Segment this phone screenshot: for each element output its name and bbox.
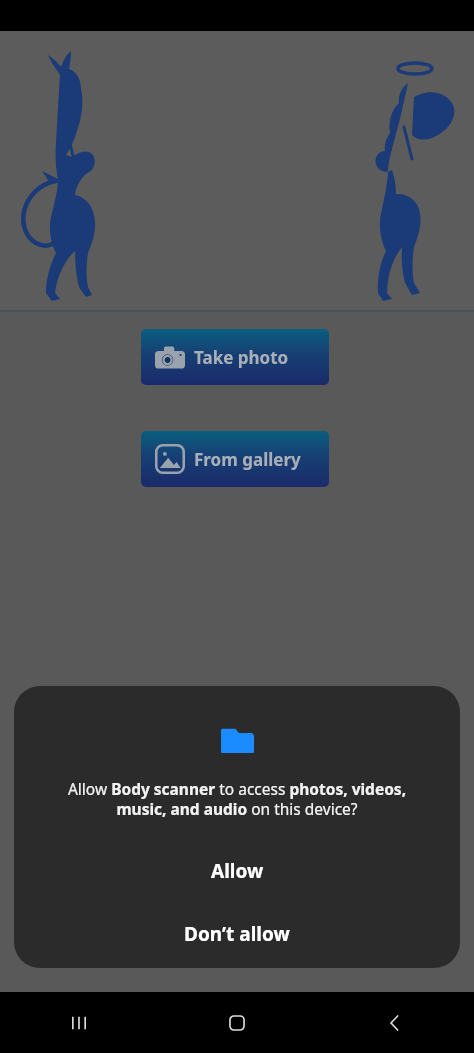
button[interactable]: Home [158, 992, 316, 1053]
staticText: Don’t allow [184, 921, 290, 947]
button[interactable]: Back [316, 992, 474, 1053]
staticText: From gallery [194, 448, 301, 471]
staticText: Take photo [194, 346, 289, 369]
button[interactable]: Take photo [141, 329, 329, 385]
button[interactable]: Don’t allow [14, 911, 460, 956]
staticText: Allow Body scanner to access photos, vid… [56, 778, 418, 820]
button[interactable]: Recent apps [0, 992, 158, 1053]
button[interactable]: From gallery [141, 431, 329, 487]
staticText: Allow [211, 858, 264, 884]
button[interactable]: Allow [14, 848, 460, 893]
